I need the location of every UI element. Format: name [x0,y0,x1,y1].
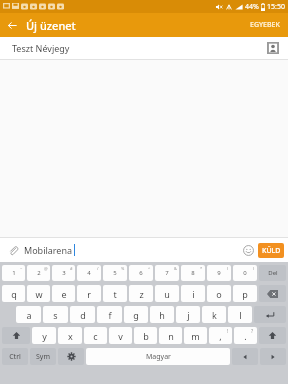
button[interactable]: v [109,327,132,344]
staticText: Ctrl [9,352,21,362]
staticText: ^ [148,266,151,271]
button[interactable]: d [70,306,95,323]
staticText: Magyar [146,352,171,362]
staticText: t [113,288,117,300]
button[interactable]: Ctrl [2,348,28,365]
staticText: n [168,330,174,342]
button[interactable]: 0 [233,265,257,281]
button[interactable]: Sym [30,348,56,365]
staticText: Mobilarena [24,244,73,256]
staticText: g [133,309,139,321]
button[interactable]: g [124,306,148,323]
button[interactable]: 1 [2,265,25,281]
staticText: j [187,309,190,321]
button[interactable]: p [233,285,257,302]
button[interactable]: 3 [52,265,75,281]
button[interactable]: 7 [155,265,179,281]
button[interactable]: q [2,285,25,302]
button[interactable]: 5 [103,265,127,281]
staticText: w [35,288,43,300]
button[interactable]: Move right [260,348,286,365]
button[interactable]: y [32,327,56,344]
button[interactable]: Attach [4,241,22,259]
staticText: a [26,309,32,321]
button[interactable]: Add recipient [266,41,280,55]
button[interactable]: 6 [129,265,153,281]
staticText: 5 [113,269,117,277]
staticText: u [164,288,170,300]
button[interactable]: a [16,306,41,323]
button[interactable]: k [202,306,226,323]
button[interactable]: f [97,306,122,323]
staticText: EGYEBEK [250,20,280,30]
staticText: ? [251,328,254,335]
button[interactable]: c [84,327,107,344]
button[interactable]: r [77,285,101,302]
button[interactable]: Shift [2,327,30,344]
staticText: y [42,330,47,342]
staticText: 2 [37,269,41,277]
button[interactable]: 9 [207,265,231,281]
staticText: m [191,330,200,342]
staticText: Teszt Névjegy [12,42,70,54]
staticText: 0 [243,269,247,277]
button[interactable]: , [209,327,232,344]
button[interactable]: l [228,306,252,323]
staticText: , [219,330,222,342]
staticText: % [121,266,125,271]
button[interactable]: Emoji [238,240,258,260]
button[interactable]: Keyboard settings [58,348,84,365]
button[interactable]: Move left [232,348,258,365]
staticText: x [68,330,73,342]
staticText: 3 [62,269,66,277]
button[interactable]: Shift [259,327,286,344]
button[interactable]: 4 [77,265,101,281]
button[interactable]: 8 [181,265,205,281]
button[interactable]: Del [259,265,286,281]
button[interactable]: EGYEBEK [242,13,288,37]
staticText: ! [227,328,229,335]
staticText: 6 [139,269,143,277]
button[interactable]: x [58,327,82,344]
staticText: o [216,288,222,300]
button[interactable]: . [234,327,257,344]
staticText: @ [44,266,48,271]
button[interactable]: t [103,285,127,302]
button[interactable]: 2 [27,265,50,281]
staticText: 15:50 [267,2,285,12]
staticText: c [93,330,98,342]
staticText: z [139,288,144,300]
staticText: # [70,266,73,271]
button[interactable]: Back [0,13,24,37]
staticText: . [244,330,247,342]
staticText: ~ [20,266,23,271]
button[interactable]: s [43,306,68,323]
button[interactable]: u [155,285,179,302]
button[interactable]: Teszt Névjegy [0,37,288,59]
button[interactable]: b [134,327,157,344]
staticText: b [143,330,149,342]
staticText: 44% [245,2,259,12]
button[interactable]: e [52,285,75,302]
button[interactable]: Magyar [86,348,230,365]
staticText: & [174,266,177,271]
button[interactable]: o [207,285,231,302]
button[interactable]: j [176,306,200,323]
staticText: KÜLD [262,246,281,256]
staticText: l [239,309,242,321]
staticText: r [87,288,91,300]
button[interactable]: i [181,285,205,302]
staticText: v [118,330,123,342]
button[interactable]: KÜLD [258,243,284,258]
staticText: 1 [12,269,16,277]
button[interactable]: Backspace [259,285,286,302]
button[interactable]: n [159,327,182,344]
button[interactable]: m [184,327,207,344]
staticText: i [192,288,195,300]
button[interactable]: z [129,285,153,302]
button[interactable]: h [150,306,174,323]
button[interactable]: w [27,285,50,302]
staticText: * [200,266,203,271]
button[interactable]: Enter [254,306,286,323]
staticText: p [242,288,248,300]
